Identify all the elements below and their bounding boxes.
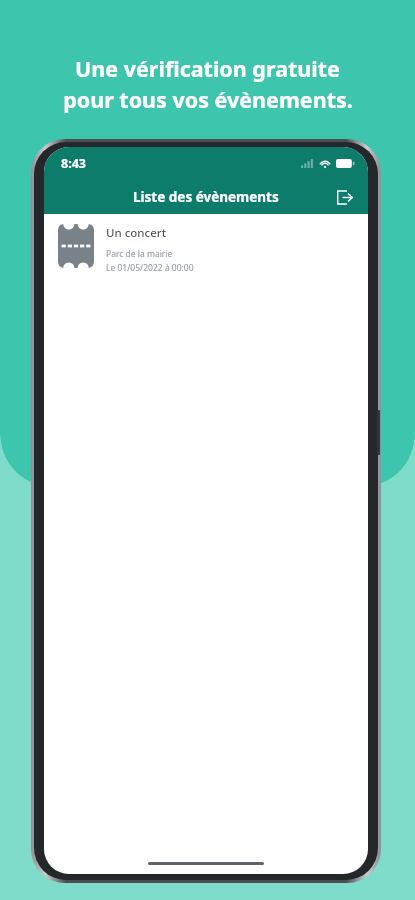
staticText: pour tous vos évènements. bbox=[63, 85, 353, 114]
staticText: Le 01/05/2022 à 00:00 bbox=[106, 262, 194, 274]
staticText: 8:43 bbox=[61, 155, 86, 172]
staticText: Liste des évènements bbox=[133, 188, 279, 206]
button[interactable]: Un concert bbox=[44, 214, 368, 283]
staticText: Une vérification gratuite bbox=[75, 54, 340, 83]
staticText: Parc de la mairie bbox=[106, 248, 173, 260]
button[interactable]: Déconnexion bbox=[328, 181, 360, 213]
staticText: Un concert bbox=[106, 225, 167, 241]
